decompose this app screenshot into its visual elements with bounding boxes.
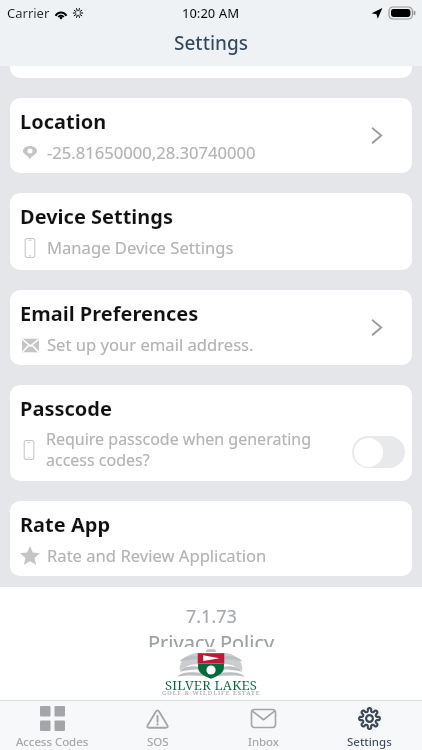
button[interactable]: Inbox bbox=[210, 701, 316, 750]
staticText: GOLF & WILDLIFE ESTATE bbox=[162, 689, 261, 697]
staticText: Rate and Review Application bbox=[47, 544, 267, 567]
staticText: Device Settings bbox=[20, 203, 174, 230]
staticText: Inbox bbox=[248, 734, 279, 750]
button[interactable]: Email Preferences bbox=[10, 290, 412, 365]
staticText: -25.81650000,28.30740000 bbox=[47, 141, 256, 164]
staticText: Passcode bbox=[20, 395, 112, 422]
staticText: 10:20 AM bbox=[182, 4, 240, 22]
staticText: Email Preferences bbox=[20, 300, 199, 327]
button[interactable]: Privacy Policy bbox=[148, 629, 275, 656]
staticText: Carrier bbox=[7, 4, 50, 22]
staticText: Manage Device Settings bbox=[47, 236, 234, 259]
button[interactable]: Device Settings bbox=[10, 193, 412, 270]
button[interactable]: Rate App bbox=[10, 501, 412, 576]
button[interactable]: Settings bbox=[316, 701, 422, 750]
staticText: Access Codes bbox=[16, 734, 89, 750]
button[interactable]: SOS bbox=[105, 701, 210, 750]
staticText: SOS bbox=[147, 734, 169, 750]
staticText: Require passcode when generating access … bbox=[46, 428, 312, 471]
staticText: Settings bbox=[174, 30, 248, 56]
button[interactable]: Access Codes bbox=[0, 701, 105, 750]
staticText: Rate App bbox=[20, 511, 111, 538]
staticText: Settings bbox=[347, 734, 392, 750]
staticText: 7.1.73 bbox=[186, 604, 237, 629]
staticText: SILVER LAKES bbox=[165, 676, 258, 694]
staticText: Set up your email address. bbox=[47, 333, 254, 356]
staticText: Location bbox=[20, 108, 107, 135]
button[interactable]: Require passcode toggle bbox=[352, 436, 405, 468]
button[interactable]: Location bbox=[10, 98, 412, 173]
